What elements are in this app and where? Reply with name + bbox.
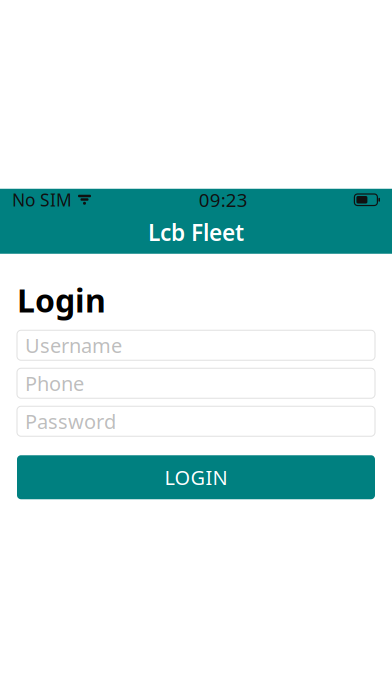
staticText: No SIM xyxy=(12,188,72,211)
staticText: Username xyxy=(25,332,122,359)
staticText: 09:23 xyxy=(199,187,248,212)
button[interactable]: Password xyxy=(17,406,375,436)
staticText: LOGIN xyxy=(164,464,227,491)
button[interactable]: LOGIN xyxy=(17,455,375,499)
staticText: Login xyxy=(17,279,106,321)
staticText: Password xyxy=(25,408,116,435)
button[interactable]: Phone xyxy=(17,368,375,398)
button[interactable]: Username xyxy=(17,330,375,360)
staticText: Lcb Fleet xyxy=(148,217,244,247)
staticText: Phone xyxy=(25,370,84,397)
